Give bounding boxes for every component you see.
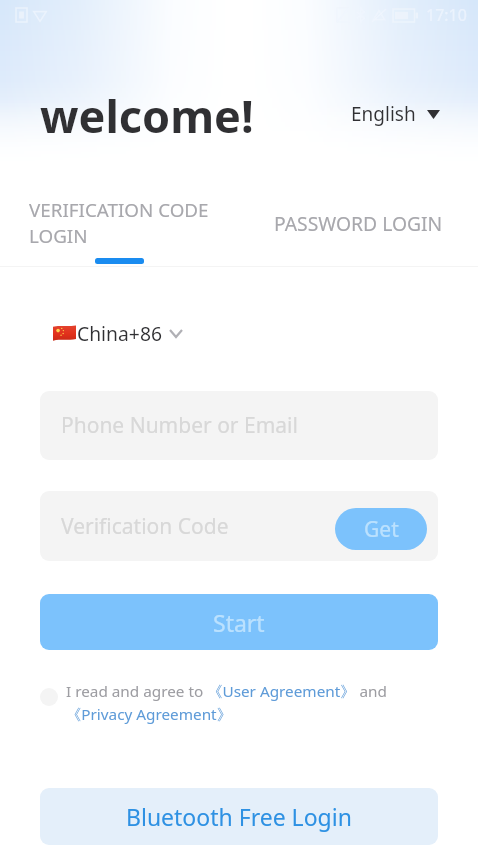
button[interactable]: Bluetooth Free Login <box>40 788 438 845</box>
staticText: Get <box>364 515 399 544</box>
button[interactable]: Phone Number or Email <box>40 391 438 460</box>
staticText: PASSWORD LOGIN <box>274 210 443 236</box>
button[interactable]: VERIFICATION CODE LOGIN <box>0 185 239 265</box>
button[interactable]: Start <box>40 594 438 650</box>
staticText: welcome! <box>40 85 254 146</box>
button[interactable]: China+86 <box>53 318 182 348</box>
button[interactable]: Get <box>335 508 427 550</box>
button[interactable]: PASSWORD LOGIN <box>237 185 476 265</box>
staticText: Start <box>213 607 265 638</box>
staticText: Verification Code <box>61 512 229 541</box>
staticText: China+86 <box>77 320 162 346</box>
staticText: Phone Number or Email <box>61 411 298 440</box>
button[interactable]: Agree to terms checkbox <box>40 688 58 706</box>
staticText: I read and agree to 《User Agreement》 and… <box>66 681 387 725</box>
button[interactable]: English <box>345 95 446 133</box>
staticText: 17:10 <box>426 4 467 26</box>
staticText: Bluetooth Free Login <box>126 801 352 832</box>
staticText: VERIFICATION CODE LOGIN <box>29 197 209 249</box>
staticText: English <box>351 101 416 127</box>
